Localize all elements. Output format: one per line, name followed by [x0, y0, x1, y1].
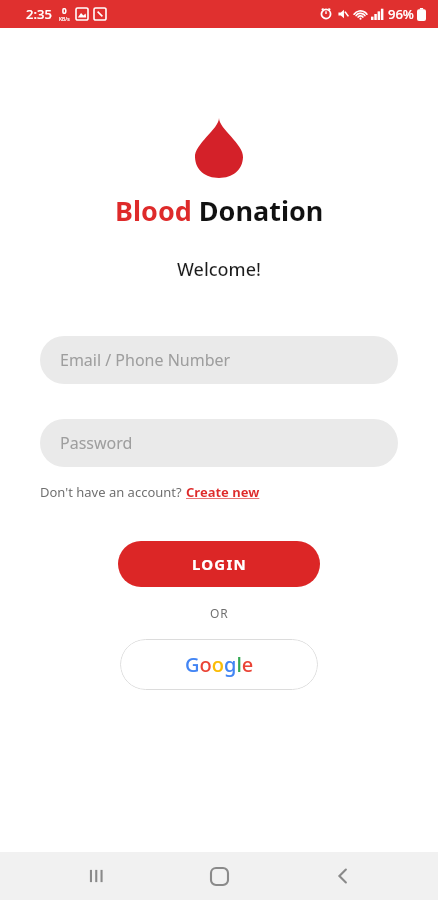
button[interactable]: Recent apps: [68, 852, 124, 900]
staticText: LOGIN: [192, 554, 247, 574]
button[interactable]: Sign in with Google: [120, 639, 318, 690]
staticText: Google: [185, 651, 254, 678]
staticText: Create new: [186, 483, 260, 501]
button[interactable]: Home: [191, 852, 247, 900]
staticText: Email / Phone Number: [60, 349, 231, 371]
button[interactable]: LOGIN: [118, 541, 320, 587]
staticText: Blood Donation: [115, 192, 324, 229]
button[interactable]: Password: [40, 419, 398, 467]
staticText: 2:35: [26, 5, 52, 23]
staticText: 0: [62, 5, 67, 16]
button[interactable]: Create new: [186, 483, 260, 501]
staticText: Password: [60, 432, 133, 454]
staticText: 96%: [388, 5, 414, 23]
button[interactable]: Email / Phone Number: [40, 336, 398, 384]
staticText: OR: [210, 605, 229, 621]
staticText: Don't have an account?: [40, 483, 186, 501]
staticText: Welcome!: [177, 257, 261, 282]
button[interactable]: Back: [315, 852, 371, 900]
staticText: KB/s: [59, 16, 70, 23]
